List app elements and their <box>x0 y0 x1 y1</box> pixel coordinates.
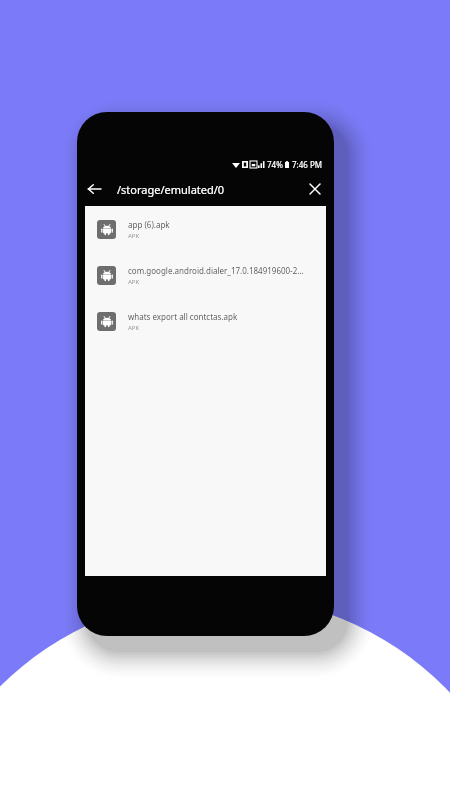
button[interactable]: app (6).apk <box>85 206 326 252</box>
button[interactable]: com.google.android.dialer_17.0.184919600… <box>85 252 326 298</box>
staticText: APK <box>128 232 140 240</box>
staticText: /storage/emulated/0 <box>117 182 225 197</box>
staticText: 74% <box>267 159 283 170</box>
button[interactable]: Close <box>298 172 332 206</box>
button[interactable]: Back <box>77 172 111 206</box>
button[interactable]: whats export all contctas.apk <box>85 298 326 344</box>
staticText: com.google.android.dialer_17.0.184919600… <box>128 265 304 276</box>
staticText: 7:46 PM <box>292 159 323 170</box>
staticText: whats export all contctas.apk <box>128 311 238 322</box>
staticText: app (6).apk <box>128 219 170 230</box>
staticText: APK <box>128 324 140 332</box>
staticText: APK <box>128 278 140 286</box>
